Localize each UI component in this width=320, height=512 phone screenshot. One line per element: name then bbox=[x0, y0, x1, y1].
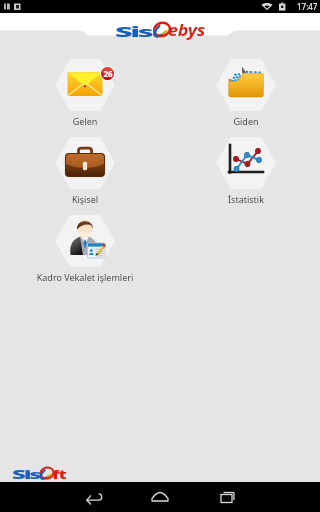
staticText: Sis bbox=[12, 466, 40, 482]
staticText: Kişisel bbox=[0, 193, 175, 205]
staticText: Sis bbox=[115, 21, 152, 40]
button[interactable]: Kadro Vekalet işlemleri bbox=[0, 207, 175, 282]
button[interactable]: İstatistik bbox=[156, 129, 320, 204]
button[interactable]: Home bbox=[137, 482, 183, 512]
button[interactable]: 26 bbox=[0, 51, 175, 126]
staticText: Kadro Vekalet işlemleri bbox=[0, 271, 175, 283]
button[interactable]: Kişisel bbox=[0, 129, 175, 204]
staticText: Giden bbox=[156, 115, 320, 127]
staticText: ebys bbox=[168, 19, 205, 41]
button[interactable]: Back bbox=[70, 482, 116, 512]
staticText: ft bbox=[52, 466, 67, 482]
staticText: 17:47 bbox=[297, 1, 318, 12]
button[interactable]: Recent apps bbox=[205, 482, 251, 512]
staticText: 26 bbox=[101, 68, 115, 79]
button[interactable]: SisEbys bbox=[0, 0, 320, 40]
staticText: İstatistik bbox=[156, 193, 320, 205]
button[interactable]: Giden bbox=[156, 51, 320, 126]
staticText: Gelen bbox=[0, 115, 175, 127]
